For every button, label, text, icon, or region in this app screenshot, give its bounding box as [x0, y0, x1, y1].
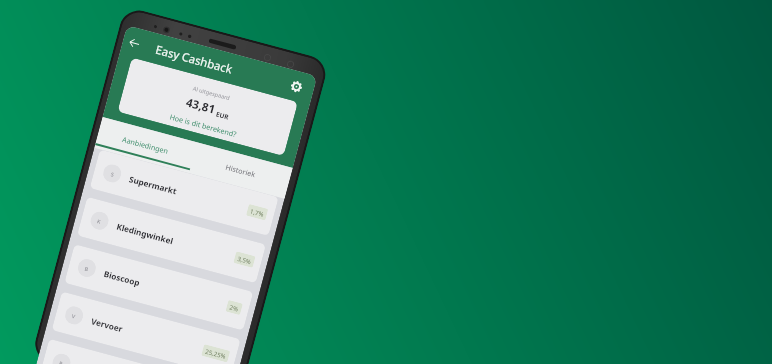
staticText: EUR	[215, 109, 230, 121]
staticText: Aanbiedingen	[121, 134, 170, 156]
staticText: K	[97, 217, 102, 225]
staticText: S	[110, 170, 115, 178]
staticText: Kledingwinkel	[115, 221, 175, 246]
staticText: V	[71, 312, 77, 320]
button[interactable]: V	[52, 291, 241, 364]
staticText: 1,7%	[249, 206, 265, 218]
button[interactable]: S	[90, 149, 279, 236]
staticText: R	[58, 359, 64, 364]
button[interactable]: Back	[119, 25, 148, 61]
button[interactable]: Historiek	[189, 142, 293, 199]
staticText: Hoe is dit berekend?	[169, 112, 238, 139]
button[interactable]: Al uitgespaard	[117, 57, 298, 156]
staticText: Bioscoop	[103, 268, 141, 288]
staticText: 25,25%	[204, 347, 227, 360]
staticText: 2%	[229, 302, 240, 313]
staticText: 3,5%	[237, 254, 252, 265]
button[interactable]: K	[77, 197, 266, 283]
staticText: Easy Cashback	[154, 42, 234, 78]
staticText: B	[84, 265, 90, 272]
staticText: 43,81	[184, 94, 217, 118]
button[interactable]: Settings	[279, 68, 312, 105]
staticText: Historiek	[225, 162, 257, 179]
staticText: Al uitgespaard	[192, 84, 232, 102]
button[interactable]: Aanbiedingen	[94, 117, 197, 173]
button[interactable]: B	[64, 244, 253, 331]
button[interactable]: R	[39, 339, 228, 364]
staticText: Vervoer	[90, 315, 125, 334]
staticText: Supermarkt	[128, 173, 178, 196]
